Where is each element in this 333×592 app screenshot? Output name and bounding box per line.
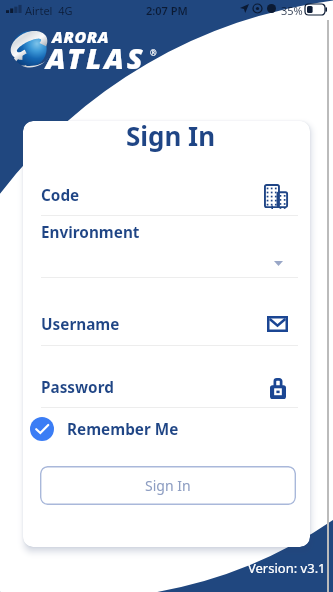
button[interactable]: Username <box>267 316 288 332</box>
staticText: Airtel 4G <box>25 3 73 18</box>
staticText: ARORA <box>52 26 110 48</box>
staticText: Password <box>41 377 114 398</box>
button[interactable]: Sign In <box>40 466 296 505</box>
staticText: Code <box>41 185 80 206</box>
staticText: Sign In <box>145 476 191 495</box>
staticText: 2:07 PM <box>146 3 188 18</box>
button[interactable]: Remember Me <box>24 410 185 448</box>
staticText: 35% <box>281 3 303 18</box>
button[interactable]: Password <box>270 378 286 399</box>
staticText: ATLAS <box>46 38 146 77</box>
staticText: Environment <box>41 222 140 243</box>
staticText: Version: v3.1 <box>248 559 326 577</box>
button[interactable]: Expand environment <box>263 251 293 275</box>
staticText: Username <box>41 314 120 335</box>
staticText: Remember Me <box>67 419 179 440</box>
button[interactable]: Select company <box>264 184 288 210</box>
staticText: Sign In <box>27 121 310 153</box>
staticText: ® <box>150 47 157 58</box>
